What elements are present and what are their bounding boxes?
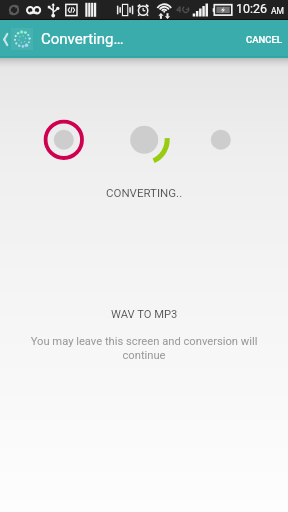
staticText: You may leave this screen and conversion… xyxy=(12,335,276,362)
staticText: 10:26 xyxy=(236,1,268,16)
button[interactable]: CANCEL xyxy=(240,20,288,58)
staticText: WAV TO MP3 xyxy=(111,308,178,321)
staticText: Converting… xyxy=(41,30,124,48)
staticText: AM xyxy=(271,6,284,16)
button[interactable]: Back xyxy=(0,20,11,58)
staticText: CANCEL xyxy=(246,34,282,45)
staticText: CONVERTING.. xyxy=(106,186,183,199)
